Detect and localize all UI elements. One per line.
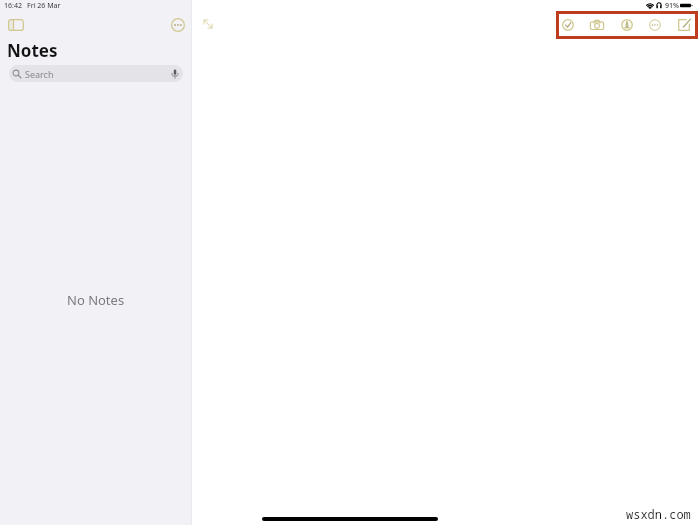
staticText: 16:42: [4, 1, 22, 11]
button[interactable]: New note: [674, 15, 694, 35]
staticText: wsxdn.com: [626, 506, 691, 522]
button[interactable]: Select notes: [558, 15, 578, 35]
button[interactable]: More: [645, 15, 665, 35]
button[interactable]: Markup: [617, 15, 637, 35]
staticText: Fri 26 Mar: [27, 1, 61, 11]
button[interactable]: Collapse: [201, 17, 215, 31]
staticText: No Notes: [67, 291, 125, 309]
staticText: Notes: [7, 39, 58, 62]
button[interactable]: More options: [170, 17, 186, 33]
button[interactable]: Camera: [587, 15, 607, 35]
staticText: 91%: [665, 1, 679, 11]
staticText: Search: [25, 68, 54, 80]
button[interactable]: Toggle sidebar: [8, 17, 24, 33]
button[interactable]: Search: [9, 65, 183, 82]
